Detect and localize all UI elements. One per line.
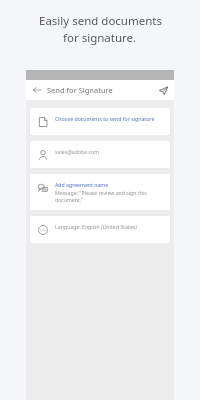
staticText: Message: "Please review and sign this	[55, 189, 147, 196]
button[interactable]: Message	[30, 174, 170, 210]
button[interactable]: Options	[30, 216, 170, 243]
staticText: Add agreement name	[55, 181, 109, 188]
other: Options	[36, 223, 49, 236]
staticText: Easily send documents	[39, 13, 162, 29]
staticText: sales@adobe.com	[55, 148, 100, 155]
button[interactable]: Recipients	[30, 141, 170, 168]
button[interactable]: Back	[30, 83, 44, 97]
other: Recipients	[36, 148, 49, 161]
button[interactable]: Documents	[30, 108, 170, 135]
staticText: Language: English (United States)	[55, 223, 137, 230]
staticText: for signature.	[63, 30, 137, 46]
staticText: Send for Signature	[47, 85, 113, 95]
staticText: document."	[55, 196, 84, 203]
staticText: Choose documents to send for signature	[55, 115, 155, 122]
other: Message	[36, 181, 49, 194]
button[interactable]: Send	[156, 83, 170, 97]
other: Documents	[36, 115, 49, 128]
